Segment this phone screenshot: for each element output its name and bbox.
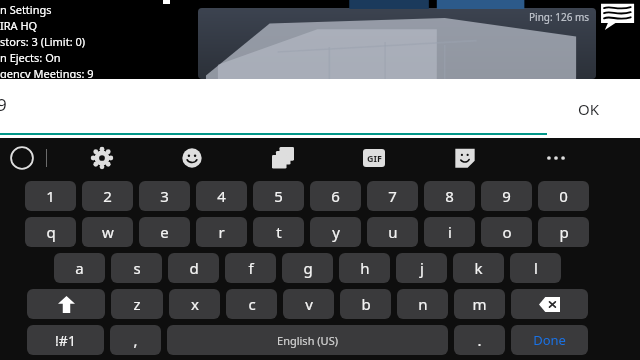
staticText: g <box>303 258 313 278</box>
staticText: n <box>418 294 428 314</box>
button[interactable] <box>27 289 105 319</box>
staticText: p <box>559 222 569 242</box>
staticText: w <box>102 222 114 242</box>
button[interactable]: Clipboard <box>267 142 299 174</box>
button[interactable]: OK <box>568 91 610 127</box>
button[interactable]: 0 <box>538 181 589 211</box>
staticText: !#1 <box>55 331 76 350</box>
staticText: . <box>477 330 482 350</box>
staticText: x <box>191 294 199 314</box>
button[interactable]: 6 <box>310 181 361 211</box>
button[interactable]: b <box>340 289 391 319</box>
staticText: l <box>534 258 538 278</box>
button[interactable]: y <box>310 217 361 247</box>
button[interactable]: Done <box>511 325 588 355</box>
button[interactable]: h <box>339 253 390 283</box>
staticText: 6 <box>331 186 340 206</box>
button[interactable]: Emoji <box>176 142 208 174</box>
staticText: y <box>332 222 340 242</box>
staticText: n Settings <box>0 2 52 17</box>
button[interactable]: g <box>282 253 333 283</box>
staticText: 8 <box>445 186 454 206</box>
staticText: c <box>248 294 256 314</box>
button[interactable]: e <box>139 217 190 247</box>
staticText: r <box>218 222 225 242</box>
button[interactable]: Stickers <box>449 142 481 174</box>
staticText: a <box>75 258 84 278</box>
button[interactable]: x <box>169 289 220 319</box>
staticText: 9 <box>0 93 7 116</box>
staticText: s <box>133 258 141 278</box>
button[interactable]: 2 <box>82 181 133 211</box>
button[interactable]: English (US) <box>167 325 448 355</box>
button[interactable]: d <box>168 253 219 283</box>
staticText: 0 <box>559 186 568 206</box>
staticText: k <box>474 258 483 278</box>
button[interactable]: j <box>396 253 447 283</box>
button[interactable]: . <box>454 325 505 355</box>
button[interactable]: t <box>253 217 304 247</box>
staticText: Done <box>533 331 566 349</box>
button[interactable]: Settings <box>86 142 118 174</box>
button[interactable]: 8 <box>424 181 475 211</box>
button[interactable]: 3 <box>139 181 190 211</box>
staticText: h <box>360 258 370 278</box>
button[interactable]: !#1 <box>27 325 104 355</box>
staticText: j <box>420 258 424 278</box>
staticText: 7 <box>388 186 397 206</box>
button[interactable]: 9 <box>481 181 532 211</box>
button[interactable]: Chat <box>598 2 636 36</box>
button[interactable]: v <box>283 289 334 319</box>
button[interactable]: o <box>481 217 532 247</box>
button[interactable]: q <box>25 217 76 247</box>
staticText: English (US) <box>277 333 338 348</box>
staticText: b <box>361 294 371 314</box>
button[interactable]: u <box>367 217 418 247</box>
button[interactable]: m <box>454 289 505 319</box>
button[interactable]: More options <box>540 142 572 174</box>
staticText: e <box>160 222 169 242</box>
staticText: 9 <box>502 186 511 206</box>
button[interactable]: r <box>196 217 247 247</box>
staticText: q <box>46 222 56 242</box>
staticText: 2 <box>103 186 112 206</box>
staticText: OK <box>578 99 600 119</box>
button[interactable]: c <box>226 289 277 319</box>
staticText: m <box>472 294 487 314</box>
staticText: n Ejects: On <box>0 50 61 65</box>
staticText: IRA HQ <box>0 18 38 33</box>
staticText: i <box>448 222 452 242</box>
staticText: u <box>388 222 398 242</box>
staticText: 4 <box>217 186 226 206</box>
button[interactable]: GIF <box>358 142 390 174</box>
staticText: d <box>189 258 199 278</box>
button[interactable]: l <box>510 253 561 283</box>
button[interactable]: 5 <box>253 181 304 211</box>
button[interactable]: p <box>538 217 589 247</box>
button[interactable]: k <box>453 253 504 283</box>
button[interactable]: , <box>110 325 161 355</box>
staticText: o <box>502 222 512 242</box>
button[interactable]: i <box>424 217 475 247</box>
staticText: v <box>305 294 313 314</box>
button[interactable]: 7 <box>367 181 418 211</box>
button[interactable]: w <box>82 217 133 247</box>
staticText: gency Meetings: 9 <box>0 66 94 78</box>
button[interactable]: 1 <box>25 181 76 211</box>
staticText: 5 <box>274 186 283 206</box>
staticText: Ping: 126 ms <box>529 10 590 24</box>
staticText: f <box>248 258 254 278</box>
staticText: 1 <box>46 186 55 206</box>
staticText: 3 <box>160 186 169 206</box>
button[interactable]: a <box>54 253 105 283</box>
button[interactable]: Translate <box>6 142 38 174</box>
staticText: stors: 3 (Limit: 0) <box>0 34 86 49</box>
button[interactable]: 4 <box>196 181 247 211</box>
button[interactable]: f <box>225 253 276 283</box>
staticText: t <box>276 222 282 242</box>
button[interactable]: z <box>111 289 163 319</box>
staticText: GIF <box>367 152 382 164</box>
button[interactable]: n <box>397 289 448 319</box>
button[interactable] <box>511 289 588 319</box>
button[interactable]: s <box>111 253 162 283</box>
